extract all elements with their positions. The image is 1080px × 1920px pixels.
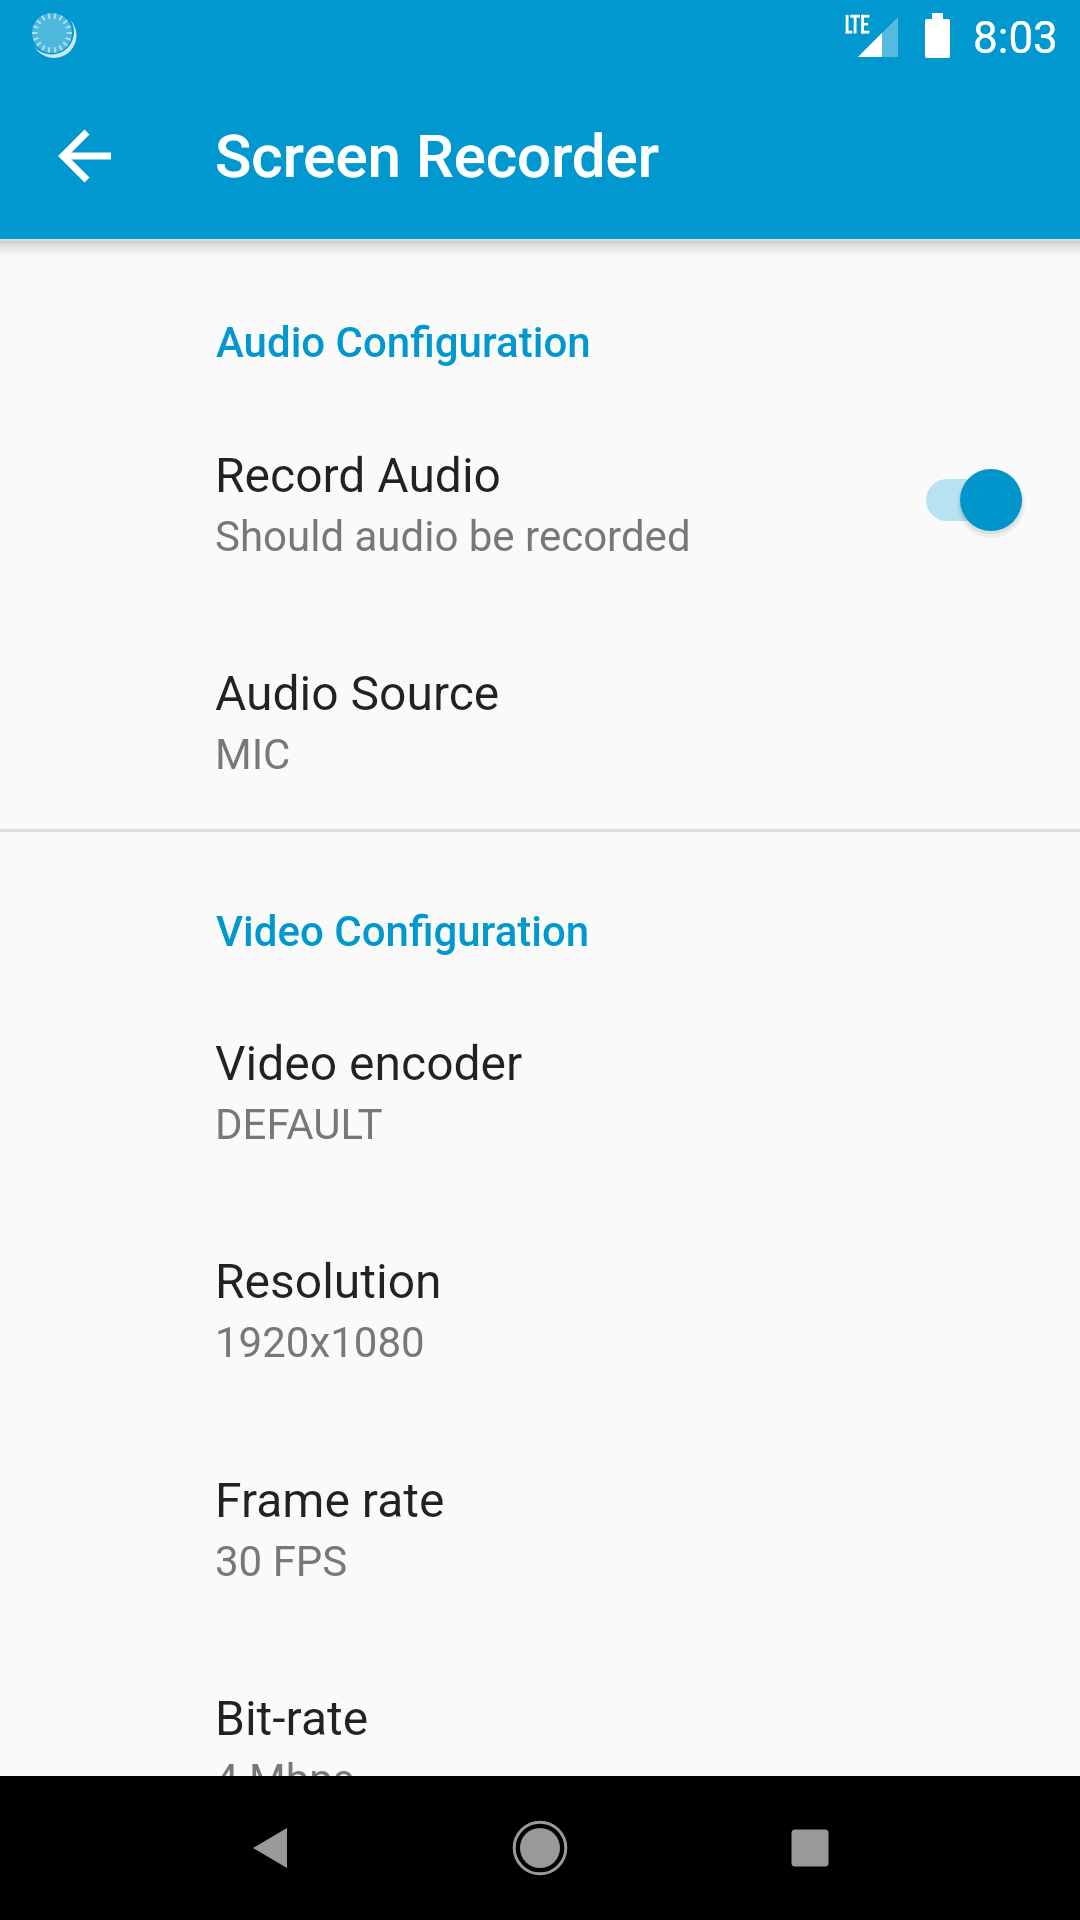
button[interactable]: Recent apps — [730, 1776, 890, 1920]
staticText: 30 FPS — [215, 1537, 348, 1586]
staticText: DEFAULT — [215, 1100, 383, 1149]
staticText: Bit-rate — [215, 1690, 369, 1746]
staticText: Audio Configuration — [216, 318, 591, 367]
button[interactable]: Home — [460, 1776, 620, 1920]
staticText: 4 Mbps — [215, 1755, 355, 1804]
staticText: 8:03 — [973, 12, 1058, 64]
button[interactable]: Video encoder — [0, 1013, 1080, 1165]
button[interactable]: Back — [190, 1776, 350, 1920]
staticText: Screen Recorder — [215, 121, 659, 191]
button[interactable]: Record Audio — [0, 425, 1080, 577]
staticText: Frame rate — [215, 1472, 445, 1528]
staticText: MIC — [215, 730, 291, 779]
button[interactable]: Audio Source — [0, 643, 1080, 795]
button[interactable]: Bit-rate — [0, 1668, 1080, 1820]
staticText: Video encoder — [215, 1035, 523, 1091]
button[interactable]: Navigate up — [39, 108, 135, 204]
staticText: Resolution — [215, 1253, 442, 1309]
staticText: 1920x1080 — [215, 1318, 425, 1367]
staticText: Video Configuration — [216, 907, 590, 956]
staticText: Record Audio — [215, 447, 501, 503]
staticText: Audio Source — [215, 665, 500, 721]
staticText: Should audio be recorded — [215, 512, 691, 561]
button[interactable]: Resolution — [0, 1231, 1080, 1383]
button[interactable]: Frame rate — [0, 1450, 1080, 1602]
